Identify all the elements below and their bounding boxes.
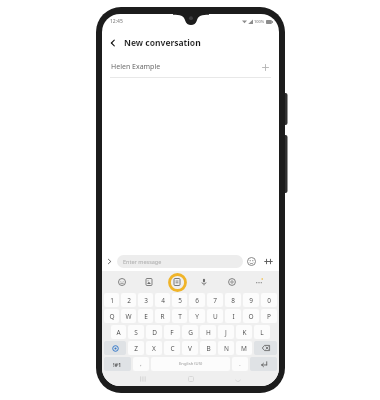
button[interactable]: B [200,341,216,355]
button[interactable]: Backspace [254,341,277,355]
button[interactable]: Expand toolbar [102,254,117,269]
button[interactable]: H [200,325,216,339]
button[interactable]: Back [102,32,124,54]
staticText: English (US) [179,361,203,367]
staticText: 3 [144,296,148,305]
button[interactable]: Gallery [139,272,159,292]
button[interactable]: O [243,309,259,323]
button[interactable]: Home [184,372,198,386]
button[interactable]: 0 [261,293,277,307]
button[interactable]: T [172,309,187,323]
button[interactable]: Send [260,253,277,270]
staticText: Z [134,344,138,353]
staticText: !#1 [113,361,122,368]
staticText: 5 [178,296,182,305]
staticText: X [152,344,156,353]
button[interactable]: Q [104,309,119,323]
staticText: A [116,328,121,337]
staticText: 4 [161,296,165,305]
staticText: 12:45 [110,18,123,25]
button[interactable]: P [261,309,277,323]
button[interactable]: 8 [225,293,241,307]
staticText: J [225,328,227,337]
button[interactable]: 2 [121,293,136,307]
staticText: 0 [267,296,271,305]
button[interactable]: , [133,357,149,371]
button[interactable]: A [111,325,126,339]
button[interactable]: Helen Example [102,56,279,77]
button[interactable]: 4 [155,293,170,307]
button[interactable]: G [182,325,198,339]
button[interactable]: U [207,309,223,323]
button[interactable]: Y [189,309,205,323]
button[interactable]: C [164,341,180,355]
staticText: O [248,312,254,321]
staticText: 7 [213,296,217,305]
button[interactable]: 6 [189,293,205,307]
staticText: , [140,361,142,368]
staticText: F [170,328,174,337]
button[interactable]: I [225,309,241,323]
button[interactable]: 1 [104,293,119,307]
button[interactable]: Z [128,341,144,355]
button[interactable]: English (US) [151,357,230,371]
button[interactable]: Enter message [117,255,243,268]
button[interactable]: V [182,341,198,355]
button[interactable]: 5 [172,293,187,307]
button[interactable]: J [218,325,234,339]
staticText: E [144,312,148,321]
button[interactable]: E [138,309,153,323]
staticText: 6 [195,296,199,305]
button[interactable]: Add recipient [257,59,273,75]
staticText: 2 [127,296,131,305]
staticText: M [241,344,247,353]
staticText: U [213,312,218,321]
button[interactable]: 7 [207,293,223,307]
staticText: G [188,328,193,337]
button[interactable]: F [164,325,180,339]
staticText: D [152,328,157,337]
button[interactable]: R [155,309,170,323]
button[interactable]: Shift [104,341,126,355]
staticText: B [206,344,211,353]
staticText: C [170,344,175,353]
button[interactable]: Symbols [104,357,131,371]
button[interactable]: Attach file [167,272,187,292]
staticText: New conversation [124,37,201,49]
staticText: L [260,328,264,337]
button[interactable]: Voice recording [194,272,214,292]
staticText: Q [109,312,115,321]
button[interactable]: D [146,325,162,339]
staticText: K [242,328,247,337]
staticText: W [125,312,132,321]
staticText: 9 [249,296,253,305]
button[interactable]: K [236,325,252,339]
button[interactable]: Emoji [243,253,260,270]
button[interactable]: 9 [243,293,259,307]
button[interactable]: Stickers [112,272,132,292]
button[interactable]: N [218,341,234,355]
button[interactable]: X [146,341,162,355]
button[interactable]: Enter [250,357,277,371]
button[interactable]: More options [249,272,269,292]
staticText: 100% [254,19,265,24]
staticText: R [160,312,165,321]
staticText: 1 [110,296,114,305]
button[interactable]: S [128,325,144,339]
staticText: T [178,312,182,321]
staticText: . [239,361,241,368]
staticText: H [206,328,211,337]
staticText: V [188,344,192,353]
button[interactable]: M [236,341,252,355]
button[interactable]: 3 [138,293,153,307]
staticText: Y [195,312,199,321]
staticText: P [267,312,271,321]
button[interactable]: L [254,325,270,339]
staticText: 8 [231,296,235,305]
button[interactable]: W [121,309,136,323]
button[interactable]: Keyboard settings [222,272,242,292]
staticText: S [134,328,138,337]
button[interactable]: Recents [136,372,150,386]
